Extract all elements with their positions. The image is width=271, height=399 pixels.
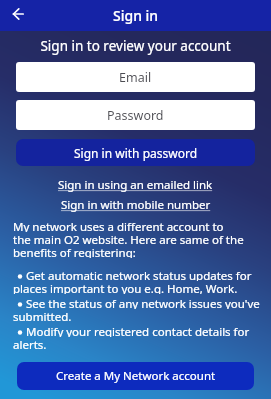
staticText: Sign in with password xyxy=(74,145,198,161)
button[interactable]: Create a My Network account xyxy=(17,362,254,390)
staticText: Sign in to review your account xyxy=(0,37,271,55)
staticText: benefits of registering: xyxy=(13,245,136,258)
button[interactable]: Password xyxy=(16,100,255,130)
button[interactable]: Sign in with password xyxy=(16,139,255,166)
staticText: Sign in using an emailed link xyxy=(58,177,213,193)
staticText: alerts. xyxy=(13,337,47,350)
staticText: Sign in with mobile number xyxy=(61,197,211,213)
button[interactable]: Sign in with mobile number xyxy=(61,197,211,213)
staticText: Get automatic network status updates for xyxy=(26,268,252,281)
staticText: Sign in xyxy=(113,6,159,25)
staticText: places important to you e.g. Home, Work. xyxy=(13,281,238,294)
button[interactable]: Email xyxy=(16,62,255,92)
staticText: submitted. xyxy=(13,309,72,322)
staticText: Create a My Network account xyxy=(56,368,216,384)
staticText: Password xyxy=(107,107,164,124)
staticText: Modify your registered contact details f… xyxy=(26,324,250,337)
staticText: My network uses a different account to xyxy=(13,219,224,232)
staticText: See the status of any network issues you… xyxy=(26,296,260,309)
button[interactable]: Sign in using an emailed link xyxy=(58,177,213,193)
staticText: Email xyxy=(119,69,152,86)
button[interactable] xyxy=(6,4,30,28)
staticText: the main O2 website. Here are same of th… xyxy=(13,232,244,245)
